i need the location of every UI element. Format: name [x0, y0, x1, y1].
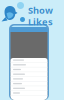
button[interactable] [10, 86, 47, 91]
button[interactable] [10, 58, 47, 63]
button[interactable] [10, 67, 47, 72]
button[interactable] [10, 72, 47, 77]
button[interactable] [10, 77, 47, 81]
staticText: Show [28, 4, 53, 16]
button[interactable] [10, 81, 47, 86]
button[interactable] [10, 91, 47, 96]
staticText: Likes [28, 15, 53, 28]
button[interactable] [10, 63, 47, 67]
